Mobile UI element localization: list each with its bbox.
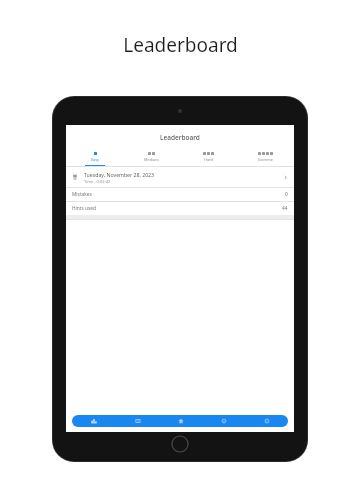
button[interactable]: Trophy — [66, 167, 294, 187]
button[interactable]: Leaderboard — [72, 415, 116, 427]
button[interactable]: Help — [202, 415, 245, 427]
button[interactable]: Mistakes — [66, 188, 294, 201]
other: Expand — [283, 175, 288, 180]
staticText: Tuesday, November 28, 2023 — [84, 171, 155, 178]
staticText: Leaderboard — [123, 32, 238, 58]
staticText: Easy — [91, 157, 99, 162]
button[interactable]: Extreme — [237, 148, 294, 166]
staticText: 0 — [285, 191, 288, 198]
button[interactable]: Games — [116, 415, 159, 427]
staticText: 44 — [282, 205, 288, 212]
button[interactable]: Home — [159, 415, 202, 427]
other: Trophy — [72, 174, 78, 180]
staticText: Hints used — [72, 205, 282, 212]
staticText: Extreme — [258, 157, 273, 162]
staticText: Leaderboard — [160, 133, 200, 142]
button[interactable]: Medium — [123, 148, 180, 166]
staticText: Medium — [144, 157, 159, 162]
button[interactable]: Easy — [66, 148, 123, 166]
button[interactable]: Settings — [245, 415, 288, 427]
staticText: Mistakes — [72, 191, 285, 198]
button[interactable]: Hard — [180, 148, 237, 166]
button[interactable]: Hints used — [66, 202, 294, 215]
staticText: Time - 0:02:42 — [84, 179, 111, 184]
staticText: Hard — [204, 157, 213, 162]
